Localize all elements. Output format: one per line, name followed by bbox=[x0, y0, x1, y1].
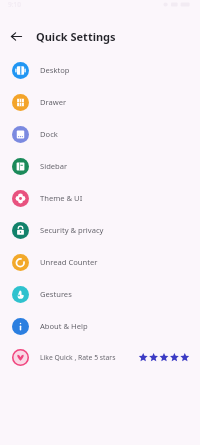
button[interactable]: Drawer bbox=[0, 86, 200, 118]
button[interactable]: Unread Counter bbox=[0, 246, 200, 278]
button[interactable]: Like Quick , Rate 5 stars bbox=[0, 342, 200, 373]
button[interactable]: Security & privacy bbox=[0, 214, 200, 246]
staticText: 9:10 bbox=[8, 0, 21, 9]
button[interactable]: Dock bbox=[0, 118, 200, 150]
staticText: Dock bbox=[40, 129, 58, 139]
button[interactable]: Theme & UI bbox=[0, 182, 200, 214]
button[interactable]: Back bbox=[5, 25, 28, 48]
staticText: Desktop bbox=[40, 65, 70, 75]
staticText: Security & privacy bbox=[40, 225, 104, 235]
button[interactable]: Desktop bbox=[0, 54, 200, 86]
staticText: Drawer bbox=[40, 97, 67, 107]
staticText: Like Quick , Rate 5 stars bbox=[40, 353, 116, 362]
button[interactable]: Gestures bbox=[0, 278, 200, 310]
staticText: About & Help bbox=[40, 321, 88, 331]
staticText: Quick Settings bbox=[36, 29, 116, 44]
button[interactable]: About & Help bbox=[0, 310, 200, 342]
staticText: Theme & UI bbox=[40, 193, 83, 203]
staticText: Unread Counter bbox=[40, 257, 98, 267]
staticText: Sidebar bbox=[40, 161, 68, 171]
staticText: Gestures bbox=[40, 289, 72, 299]
button[interactable]: Sidebar bbox=[0, 150, 200, 182]
